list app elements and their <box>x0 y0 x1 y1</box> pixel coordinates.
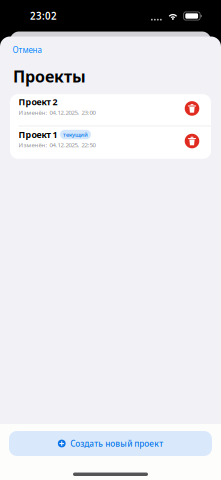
button[interactable]: Отмена <box>0 40 51 59</box>
staticText: 23:02 <box>30 9 57 23</box>
button[interactable]: Проект 1 <box>10 126 211 159</box>
button[interactable]: Создать новый проект <box>9 431 212 456</box>
button[interactable]: Удалить Проект 1 <box>179 126 205 156</box>
button[interactable]: Проект 2 <box>10 94 211 126</box>
staticText: Изменён: 04.12.2025, 23:00 <box>18 108 95 117</box>
staticText: Отмена <box>12 44 41 55</box>
staticText: Изменён: 04.12.2025, 22:50 <box>18 141 95 149</box>
staticText: Проекты <box>13 65 86 87</box>
staticText: Создать новый проект <box>70 438 163 449</box>
staticText: текущий <box>63 130 88 138</box>
staticText: Проект 2 <box>18 96 57 108</box>
staticText: Проект 1 <box>18 128 57 140</box>
button[interactable]: Удалить Проект 2 <box>179 93 205 123</box>
